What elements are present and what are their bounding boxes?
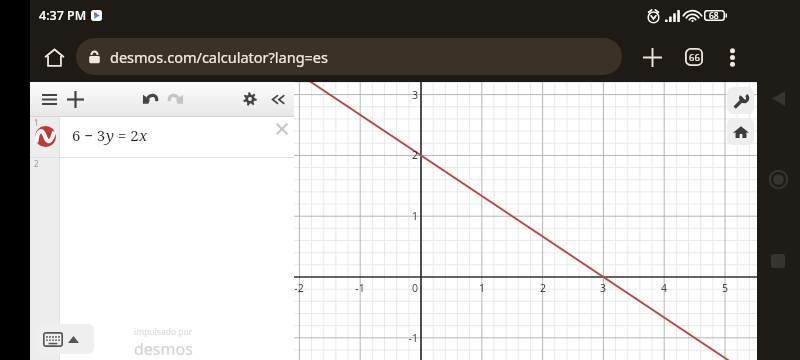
button[interactable]: New tab — [636, 41, 668, 73]
staticText: 2 — [400, 148, 418, 162]
button[interactable]: Undo — [136, 86, 162, 112]
button[interactable]: Show keyboard — [37, 324, 94, 354]
button[interactable]: Back — [763, 83, 793, 113]
staticText: 4:37 PM — [39, 7, 87, 24]
staticText: -1 — [400, 331, 418, 345]
staticText: desmos — [134, 338, 193, 360]
button[interactable]: Recent apps — [763, 246, 793, 276]
button[interactable]: Home — [763, 164, 793, 194]
staticText: 0 — [400, 281, 418, 295]
staticText: -2 — [294, 281, 308, 295]
staticText: 1 — [400, 209, 418, 223]
button[interactable]: Graph settings — [727, 87, 754, 114]
staticText: 3 — [400, 88, 418, 102]
button[interactable]: Menu — [36, 86, 62, 112]
staticText: impulsado por — [134, 326, 193, 338]
staticText: 66 — [689, 51, 700, 64]
staticText: 6 − 3 — [72, 125, 106, 145]
staticText: x — [139, 125, 148, 145]
button[interactable]: Default view — [727, 118, 754, 145]
button[interactable]: Switch tabs, 66 open — [678, 41, 710, 73]
staticText: desmos.com/calculator?lang=es — [110, 47, 328, 67]
staticText: 4 — [655, 281, 673, 295]
button[interactable]: Settings — [237, 86, 263, 112]
button[interactable]: Delete expression — [270, 117, 294, 141]
button[interactable]: Add expression — [62, 86, 88, 112]
button[interactable]: Redo — [163, 86, 189, 112]
staticText: 68 — [709, 10, 719, 21]
staticText: 2 — [34, 158, 39, 169]
staticText: 3 — [594, 281, 612, 295]
staticText: = 2 — [114, 125, 139, 145]
staticText: 2 — [534, 281, 552, 295]
staticText: 5 — [716, 281, 734, 295]
staticText: y — [106, 125, 114, 145]
button[interactable]: Home page — [38, 41, 70, 73]
staticText: 1 — [473, 281, 491, 295]
button[interactable]: Collapse panel — [264, 86, 290, 112]
button[interactable]: desmos.com/calculator?lang=es — [76, 38, 622, 75]
staticText: -1 — [351, 281, 369, 295]
staticText: 1 — [34, 117, 39, 128]
button[interactable]: 1 — [30, 117, 294, 157]
button[interactable]: More options — [716, 41, 748, 73]
